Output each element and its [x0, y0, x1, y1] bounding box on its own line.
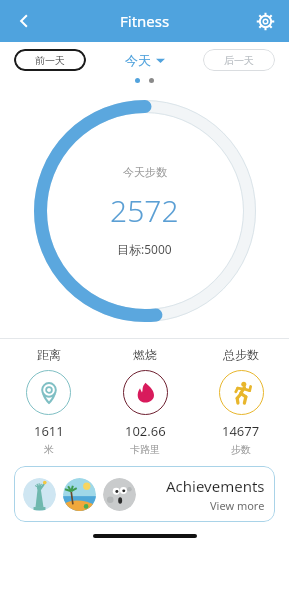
- staticText: 1611: [34, 422, 64, 440]
- button[interactable]: 后一天: [203, 49, 275, 71]
- button[interactable]: 总步数: [193, 347, 289, 456]
- staticText: 距离: [37, 347, 61, 362]
- staticText: 总步数: [223, 347, 259, 362]
- staticText: 前一天: [35, 54, 65, 67]
- staticText: 14677: [222, 422, 260, 440]
- staticText: 米: [44, 443, 54, 456]
- button[interactable]: 燃烧: [97, 347, 193, 456]
- staticText: 目标:5000: [117, 241, 172, 257]
- staticText: 今天步数: [123, 165, 167, 179]
- staticText: 今天: [125, 52, 151, 68]
- button[interactable]: 今天: [125, 52, 165, 68]
- staticText: 102.66: [125, 422, 166, 440]
- staticText: 后一天: [224, 54, 254, 67]
- button[interactable]: Achievements: [14, 466, 275, 522]
- staticText: 步数: [231, 443, 251, 456]
- button[interactable]: 距离: [0, 347, 97, 456]
- staticText: 卡路里: [130, 443, 160, 456]
- button[interactable]: 前一天: [14, 49, 86, 71]
- staticText: Fitness: [120, 11, 170, 31]
- staticText: Achievements: [166, 476, 265, 496]
- button[interactable]: Back: [4, 1, 44, 41]
- button[interactable]: Settings: [245, 1, 285, 41]
- staticText: View more: [210, 498, 265, 513]
- staticText: 2572: [110, 190, 179, 231]
- staticText: 燃烧: [133, 347, 157, 362]
